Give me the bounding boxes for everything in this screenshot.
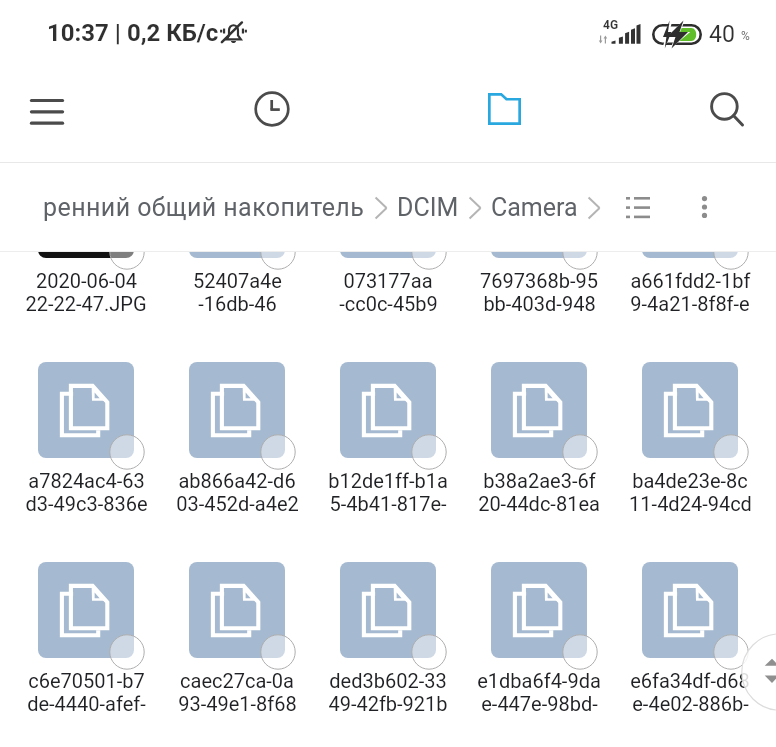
button[interactable]: ab866a42-d6 (161, 362, 313, 512)
staticText: Camera (491, 193, 578, 222)
staticText: de-4440-afef- (27, 692, 146, 715)
staticText: % (741, 29, 750, 43)
staticText: 40 (709, 21, 735, 48)
staticText: 5-4b41-817e- (329, 492, 447, 515)
staticText: e6fa34df-d68 (630, 669, 750, 692)
staticText: ba4de23e-8c (632, 469, 748, 492)
staticText: 20-44dc-81ea (478, 492, 600, 515)
staticText: ab866a42-d6 (178, 469, 296, 492)
button[interactable]: b38a2ae3-6f (463, 362, 615, 512)
button[interactable]: b12de1ff-b1a (312, 362, 464, 512)
button[interactable]: e1dba6f4-9da (463, 562, 615, 712)
button[interactable]: ренний общий накопитель (8, 171, 608, 243)
staticText: e-4e02-886b- (632, 692, 749, 715)
button[interactable]: More options (678, 181, 730, 233)
staticText: bb-403d-948 (483, 292, 596, 315)
staticText: DCIM (397, 193, 459, 222)
staticText: b12de1ff-b1a (328, 469, 448, 492)
button[interactable]: a7824ac4-63 (10, 362, 162, 512)
staticText: ренний общий накопитель (43, 193, 365, 222)
button[interactable]: 2020-06-04 (10, 252, 162, 312)
staticText: a661fdd2-1bf (630, 269, 751, 292)
button[interactable]: ba4de23e-8c (614, 362, 766, 512)
staticText: 49-42fb-921b (328, 692, 448, 715)
staticText: -16db-46 (198, 292, 277, 315)
button[interactable]: Recent files (227, 64, 317, 154)
staticText: 10:37 | 0,2 КБ/с (47, 19, 219, 47)
button[interactable]: Scroll (741, 633, 776, 711)
button[interactable]: 7697368b-95 (463, 252, 615, 312)
staticText: ded3b602-33 (329, 669, 447, 692)
button[interactable]: Storage folders (459, 64, 549, 154)
button[interactable]: 073177aa (312, 252, 464, 312)
staticText: 03-452d-a4e2 (176, 492, 299, 515)
button[interactable]: e6fa34df-d68 (614, 562, 766, 712)
staticText: 073177aa (343, 269, 433, 292)
button[interactable]: Switch to list view (612, 181, 664, 233)
staticText: e-447e-98bd- (481, 692, 598, 715)
staticText: 4G (603, 18, 619, 32)
button[interactable]: 52407a4e (161, 252, 313, 312)
staticText: 52407a4e (193, 269, 282, 292)
button[interactable]: a661fdd2-1bf (614, 252, 766, 312)
button[interactable]: Search (680, 64, 770, 154)
staticText: -cc0c-45b9 (339, 292, 438, 315)
staticText: 93-49e1-8f68 (178, 692, 297, 715)
staticText: caec27ca-0a (180, 669, 294, 692)
staticText: 2020-06-04 (36, 269, 137, 292)
staticText: 22-22-47.JPG (25, 292, 147, 315)
button[interactable]: Menu (2, 67, 92, 157)
button[interactable]: caec27ca-0a (161, 562, 313, 712)
staticText: a7824ac4-63 (28, 469, 145, 492)
button[interactable]: c6e70501-b7 (10, 562, 162, 712)
staticText: c6e70501-b7 (28, 669, 145, 692)
button[interactable]: ded3b602-33 (312, 562, 464, 712)
staticText: b38a2ae3-6f (483, 469, 596, 492)
staticText: e1dba6f4-9da (477, 669, 601, 692)
staticText: d3-49c3-836e (25, 492, 148, 515)
staticText: 7697368b-95 (480, 269, 598, 292)
staticText: 9-4a21-8f8f-e (630, 292, 750, 315)
staticText: 11-4d24-94cd (629, 492, 752, 515)
